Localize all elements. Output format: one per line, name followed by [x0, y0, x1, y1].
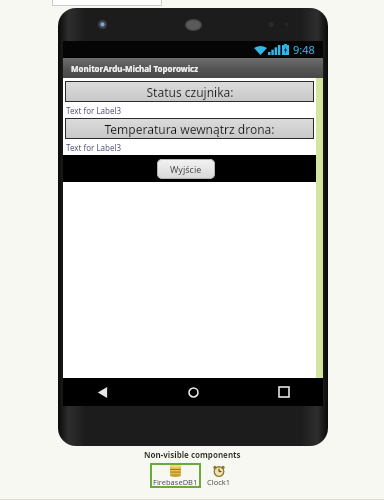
staticText: Wyjście — [170, 163, 202, 175]
button[interactable]: Home — [180, 379, 206, 405]
staticText: FirebaseDB1 — [153, 477, 198, 487]
button[interactable]: Recent apps — [271, 379, 297, 405]
staticText: Text for Label3 — [66, 105, 122, 116]
button[interactable]: Temperatura wewnątrz drona: — [65, 118, 314, 139]
button[interactable]: Clock1 — [204, 463, 234, 488]
staticText: Clock1 — [207, 477, 231, 487]
button[interactable]: Wyjście — [157, 159, 215, 179]
staticText: Non-visible components — [144, 449, 241, 460]
staticText: 9:48 — [293, 42, 315, 57]
staticText: Temperatura wewnątrz drona: — [104, 121, 275, 137]
staticText: MonitorArdu-Michal Toporowicz — [71, 63, 199, 74]
staticText: Status czujnika: — [146, 84, 234, 100]
button[interactable]: Status czujnika: — [65, 81, 314, 102]
button[interactable]: Back — [89, 379, 115, 405]
button[interactable]: FirebaseDB1 — [150, 463, 201, 488]
staticText: Text for Label3 — [66, 142, 122, 153]
